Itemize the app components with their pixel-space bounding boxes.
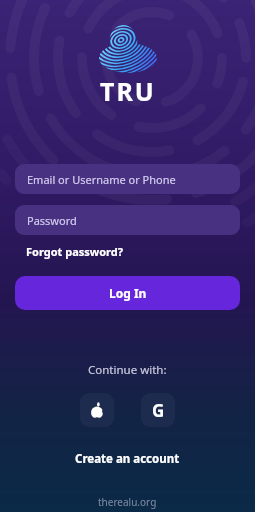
- button[interactable]: [80, 393, 114, 427]
- staticText: Continue with:: [88, 362, 167, 378]
- staticText: G: [152, 399, 165, 422]
- button[interactable]: Email or Username or Phone: [15, 164, 240, 194]
- staticText: Log In: [109, 285, 147, 301]
- button[interactable]: Forgot password?: [26, 244, 123, 259]
- button[interactable]: Log In: [15, 276, 240, 310]
- staticText: Password: [27, 213, 77, 228]
- button[interactable]: G: [141, 393, 175, 427]
- button[interactable]: Password: [15, 205, 240, 235]
- staticText: Email or Username or Phone: [27, 172, 176, 187]
- staticText: therealu.org: [98, 495, 157, 509]
- staticText: TRU: [100, 74, 156, 108]
- button[interactable]: Create an account: [75, 451, 180, 467]
